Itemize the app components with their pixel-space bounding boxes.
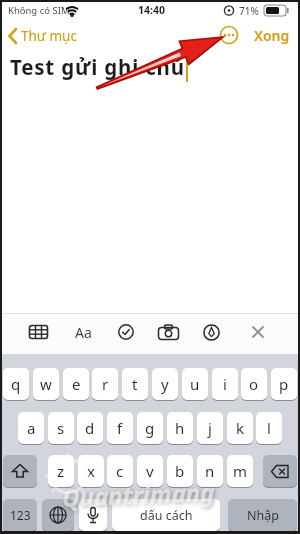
staticText: a [27, 418, 36, 438]
button[interactable]: a [18, 412, 44, 444]
button[interactable] [117, 323, 135, 341]
button[interactable]: j [197, 412, 223, 444]
staticText: r [102, 374, 109, 394]
staticText: Xong [254, 26, 290, 45]
staticText: d [85, 418, 95, 438]
staticText: Không có SIM [8, 4, 70, 17]
staticText: 14:40 [138, 3, 165, 17]
staticText: x [87, 461, 95, 481]
staticText: y [161, 374, 169, 394]
button[interactable] [27, 323, 49, 341]
staticText: f [117, 418, 123, 438]
button[interactable]: m [227, 455, 253, 487]
button[interactable] [250, 22, 294, 46]
staticText: e [72, 374, 81, 394]
button[interactable]: 123 [3, 499, 37, 531]
button[interactable]: k [227, 412, 253, 444]
button[interactable]: c [107, 455, 133, 487]
button[interactable]: q [3, 368, 29, 400]
staticText: g [145, 418, 155, 438]
button[interactable] [250, 324, 266, 340]
staticText: o [249, 374, 259, 394]
button[interactable]: w [33, 368, 59, 400]
button[interactable] [157, 323, 179, 341]
staticText: l [267, 418, 271, 438]
button[interactable] [219, 25, 239, 45]
button[interactable]: n [197, 455, 223, 487]
staticText: j [208, 418, 212, 438]
staticText: p [279, 374, 289, 394]
staticText: n [205, 461, 215, 481]
button[interactable]: Nhập [228, 499, 297, 531]
staticText: i [223, 374, 227, 394]
button[interactable] [263, 455, 297, 487]
button[interactable]: g [137, 412, 163, 444]
staticText: b [175, 461, 185, 481]
staticText: k [236, 418, 245, 438]
button[interactable]: z [48, 455, 74, 487]
button[interactable] [72, 322, 98, 342]
button[interactable]: b [167, 455, 193, 487]
button[interactable] [3, 455, 37, 487]
staticText: v [146, 461, 154, 481]
button[interactable]: x [78, 455, 104, 487]
button[interactable]: f [107, 412, 133, 444]
staticText: t [132, 374, 138, 394]
button[interactable]: i [212, 368, 238, 400]
button[interactable]: dấu cách [112, 499, 220, 531]
staticText: Nhập [247, 507, 279, 524]
staticText: Thư mục [21, 27, 77, 45]
button[interactable]: h [167, 412, 193, 444]
staticText: q [11, 374, 21, 394]
staticText: m [233, 461, 248, 481]
button[interactable]: v [137, 455, 163, 487]
staticText: Quantrimang [61, 475, 216, 514]
button[interactable] [6, 24, 76, 46]
staticText: 71% [239, 4, 259, 18]
staticText: h [175, 418, 185, 438]
staticText: s [57, 418, 65, 438]
staticText: z [57, 461, 65, 481]
staticText: Aa [75, 323, 92, 342]
button[interactable]: u [182, 368, 208, 400]
button[interactable]: y [152, 368, 178, 400]
button[interactable] [42, 499, 74, 531]
button[interactable]: r [92, 368, 118, 400]
button[interactable]: d [77, 412, 103, 444]
staticText: c [116, 461, 124, 481]
staticText: w [40, 374, 52, 394]
button[interactable]: t [122, 368, 148, 400]
button[interactable]: e [63, 368, 89, 400]
button[interactable]: l [256, 412, 282, 444]
button[interactable] [79, 499, 107, 531]
button[interactable] [202, 323, 220, 341]
button[interactable]: p [271, 368, 297, 400]
staticText: dấu cách [140, 507, 193, 524]
button[interactable]: o [241, 368, 267, 400]
staticText: Test gửi ghi chú [10, 53, 185, 81]
staticText: 123 [10, 507, 31, 523]
button[interactable]: s [48, 412, 74, 444]
staticText: u [190, 374, 200, 394]
